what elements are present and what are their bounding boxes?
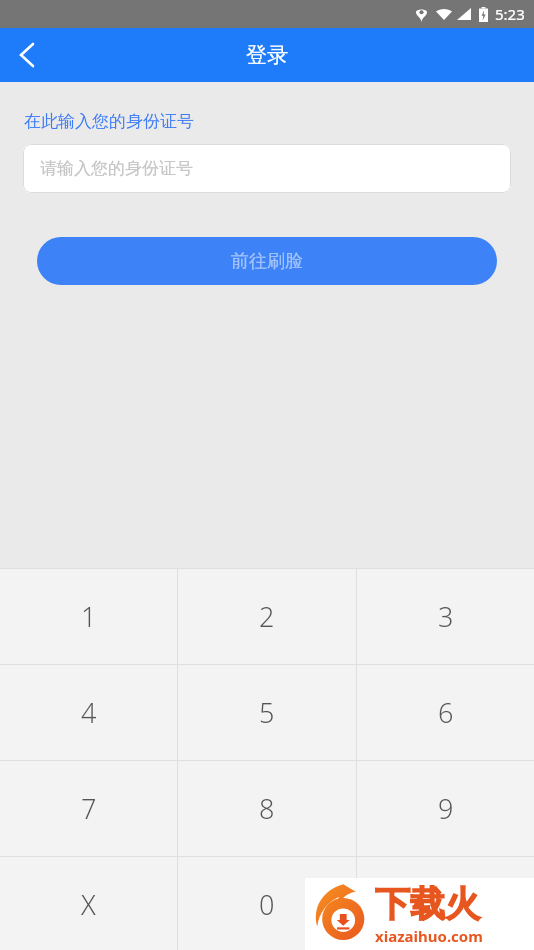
button[interactable]: 1	[0, 569, 177, 664]
staticText: 下载火	[375, 882, 480, 926]
button[interactable]: 0	[178, 857, 356, 950]
staticText: 0	[259, 886, 275, 923]
button[interactable]: 6	[357, 665, 534, 760]
button[interactable]: Key	[357, 857, 534, 950]
staticText: 前往刷脸	[231, 250, 303, 273]
staticText: 7	[81, 790, 97, 827]
staticText: 8	[259, 790, 275, 827]
button[interactable]: Back	[0, 28, 54, 82]
staticText: 请输入您的身份证号	[40, 158, 193, 179]
staticText: 3	[438, 598, 454, 635]
button[interactable]: 3	[357, 569, 534, 664]
button[interactable]: 请输入您的身份证号	[23, 144, 511, 193]
button[interactable]: 2	[178, 569, 356, 664]
staticText: 2	[259, 598, 275, 635]
staticText: xiazaihuo.com	[375, 926, 483, 946]
button[interactable]: 7	[0, 761, 177, 856]
button[interactable]: X	[0, 857, 177, 950]
staticText: X	[81, 886, 96, 923]
button[interactable]: 8	[178, 761, 356, 856]
staticText: 9	[438, 790, 454, 827]
staticText: 4	[81, 694, 97, 731]
staticText: 5	[259, 694, 275, 731]
button[interactable]: 前往刷脸	[37, 237, 497, 285]
staticText: 登录	[246, 42, 288, 68]
staticText: 在此输入您的身份证号	[24, 111, 194, 132]
button[interactable]: 4	[0, 665, 177, 760]
staticText: 6	[438, 694, 454, 731]
button[interactable]: 5	[178, 665, 356, 760]
button[interactable]: 9	[357, 761, 534, 856]
staticText: 5:23	[495, 4, 525, 24]
staticText: 1	[81, 598, 97, 635]
